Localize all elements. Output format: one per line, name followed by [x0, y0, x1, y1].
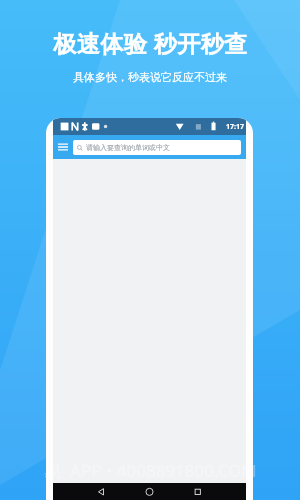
staticText: 易 APP • 4008891800.COM [44, 459, 257, 482]
staticText: 极速体验 秒开秒查 [53, 27, 248, 58]
staticText: 17:17 [226, 122, 244, 132]
staticText: 具体多快，秒表说它反应不过来 [73, 70, 227, 84]
staticText: 请输入要查询的单词或中文 [86, 143, 170, 152]
button[interactable]: Menu [53, 135, 73, 159]
button[interactable]: 请输入要查询的单词或中文 [73, 140, 241, 155]
